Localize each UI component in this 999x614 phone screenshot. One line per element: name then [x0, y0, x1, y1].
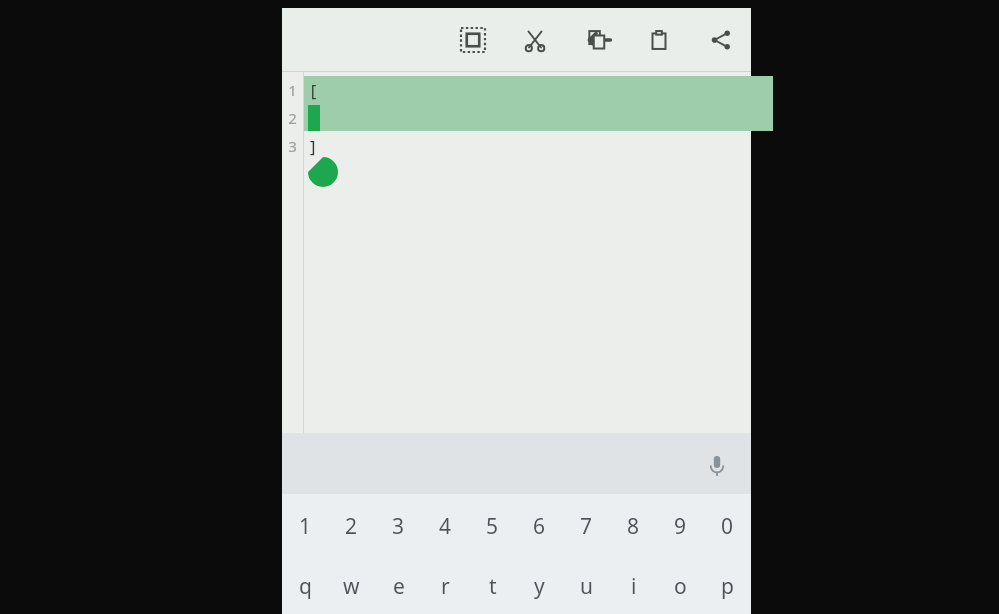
button[interactable]: Share: [701, 20, 741, 60]
staticText: [: [308, 79, 319, 102]
button[interactable]: Select all: [453, 20, 493, 60]
staticText: 3: [288, 136, 297, 156]
button[interactable]: 6: [516, 494, 563, 558]
button[interactable]: y: [516, 558, 563, 614]
staticText: 4: [439, 512, 452, 541]
button[interactable]: Back: [580, 20, 620, 60]
button[interactable]: 9: [657, 494, 704, 558]
staticText: y: [534, 572, 545, 601]
staticText: 9: [674, 512, 687, 541]
button[interactable]: w: [328, 558, 375, 614]
button[interactable]: Cut: [515, 20, 555, 60]
button[interactable]: Copy: [577, 20, 617, 60]
button[interactable]: 4: [422, 494, 469, 558]
button[interactable]: 1: [282, 72, 751, 433]
button[interactable]: o: [657, 558, 704, 614]
button[interactable]: 2: [328, 494, 375, 558]
button[interactable]: 7: [563, 494, 610, 558]
button[interactable]: 8: [610, 494, 657, 558]
staticText: q: [299, 572, 312, 601]
staticText: 8: [627, 512, 640, 541]
staticText: 3: [392, 512, 405, 541]
staticText: w: [343, 572, 360, 601]
staticText: 0: [721, 512, 734, 541]
button[interactable]: r: [422, 558, 469, 614]
staticText: t: [489, 572, 497, 601]
button[interactable]: i: [610, 558, 657, 614]
staticText: 5: [486, 512, 499, 541]
staticText: e: [393, 572, 405, 601]
staticText: 7: [580, 512, 593, 541]
staticText: 1: [288, 80, 297, 100]
button[interactable]: t: [469, 558, 516, 614]
staticText: 1: [299, 512, 312, 541]
button[interactable]: 3: [375, 494, 422, 558]
staticText: ]: [308, 135, 319, 158]
button[interactable]: q: [282, 558, 328, 614]
button[interactable]: u: [563, 558, 610, 614]
button[interactable]: Voice input: [697, 444, 737, 484]
button[interactable]: 1: [282, 494, 328, 558]
staticText: u: [580, 572, 593, 601]
button[interactable]: 5: [469, 494, 516, 558]
button[interactable]: Voice input: [282, 433, 751, 494]
staticText: r: [441, 572, 450, 601]
button[interactable]: e: [375, 558, 422, 614]
staticText: 2: [345, 512, 358, 541]
staticText: i: [631, 572, 637, 601]
staticText: 6: [533, 512, 546, 541]
staticText: p: [721, 572, 734, 601]
staticText: 2: [288, 108, 297, 128]
button[interactable]: 0: [704, 494, 751, 558]
button[interactable]: p: [704, 558, 751, 614]
staticText: o: [674, 572, 687, 601]
button[interactable]: Paste: [639, 20, 679, 60]
